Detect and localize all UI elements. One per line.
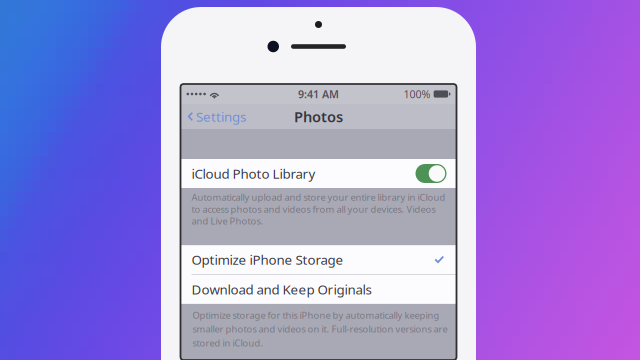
staticText: Optimize iPhone Storage [191, 251, 343, 268]
staticText: Optimize storage for this iPhone by auto… [192, 309, 439, 321]
staticText: Automatically upload and store your enti… [191, 191, 445, 203]
staticText: 9:41 AM [298, 87, 339, 101]
staticText: Photos [294, 107, 343, 126]
staticText: stored in iCloud. [192, 337, 263, 349]
staticText: smaller photos and videos on it. Full-re… [192, 323, 447, 335]
staticText: to access photos and videos from all you… [191, 203, 435, 215]
staticText: Download and Keep Originals [191, 280, 371, 298]
staticText: Settings [196, 108, 246, 125]
button[interactable]: Settings [180, 104, 250, 129]
staticText: iCloud Photo Library [191, 165, 315, 182]
staticText: 100% [403, 87, 430, 101]
staticText: and Live Photos. [191, 215, 263, 227]
